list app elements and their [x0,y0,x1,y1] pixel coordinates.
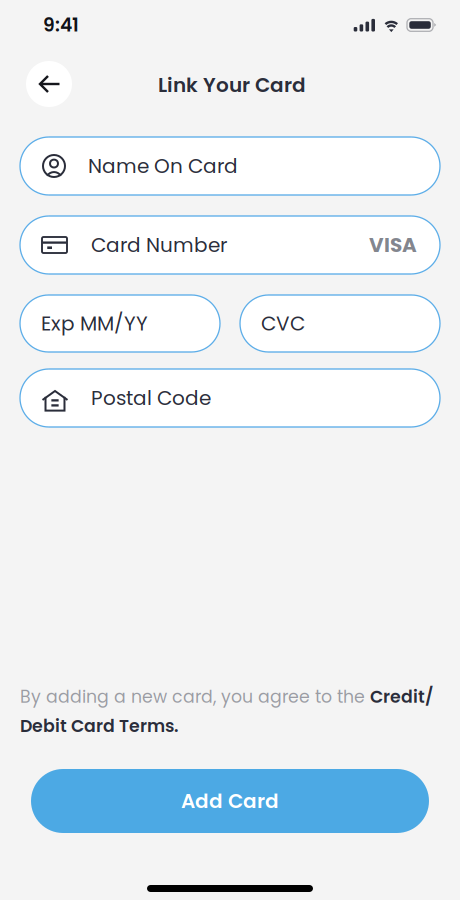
button[interactable]: Postal Code [20,369,440,427]
staticText: Debit Card Terms. [20,714,179,738]
button[interactable]: Card Number [20,216,440,274]
staticText: VISA [369,231,417,259]
button[interactable]: Credit/ [370,684,433,709]
staticText: Exp MM/YY [41,309,148,337]
button[interactable]: Exp MM/YY [20,295,220,352]
staticText: Link Your Card [158,71,306,99]
staticText: Card Number [91,231,227,259]
button[interactable]: Debit Card Terms. [20,714,179,738]
button[interactable]: Back [26,61,72,107]
staticText: CVC [261,309,305,337]
staticText: Name On Card [88,152,238,180]
staticText: Postal Code [91,384,211,412]
button[interactable]: CVC [240,295,440,352]
staticText: Credit/ [370,684,433,709]
staticText: Add Card [181,787,279,815]
button[interactable]: Name On Card [20,137,440,195]
button[interactable]: Add Card [31,769,429,833]
staticText: By adding a new card, you agree to the [20,684,370,709]
staticText: 9:41 [43,12,79,38]
